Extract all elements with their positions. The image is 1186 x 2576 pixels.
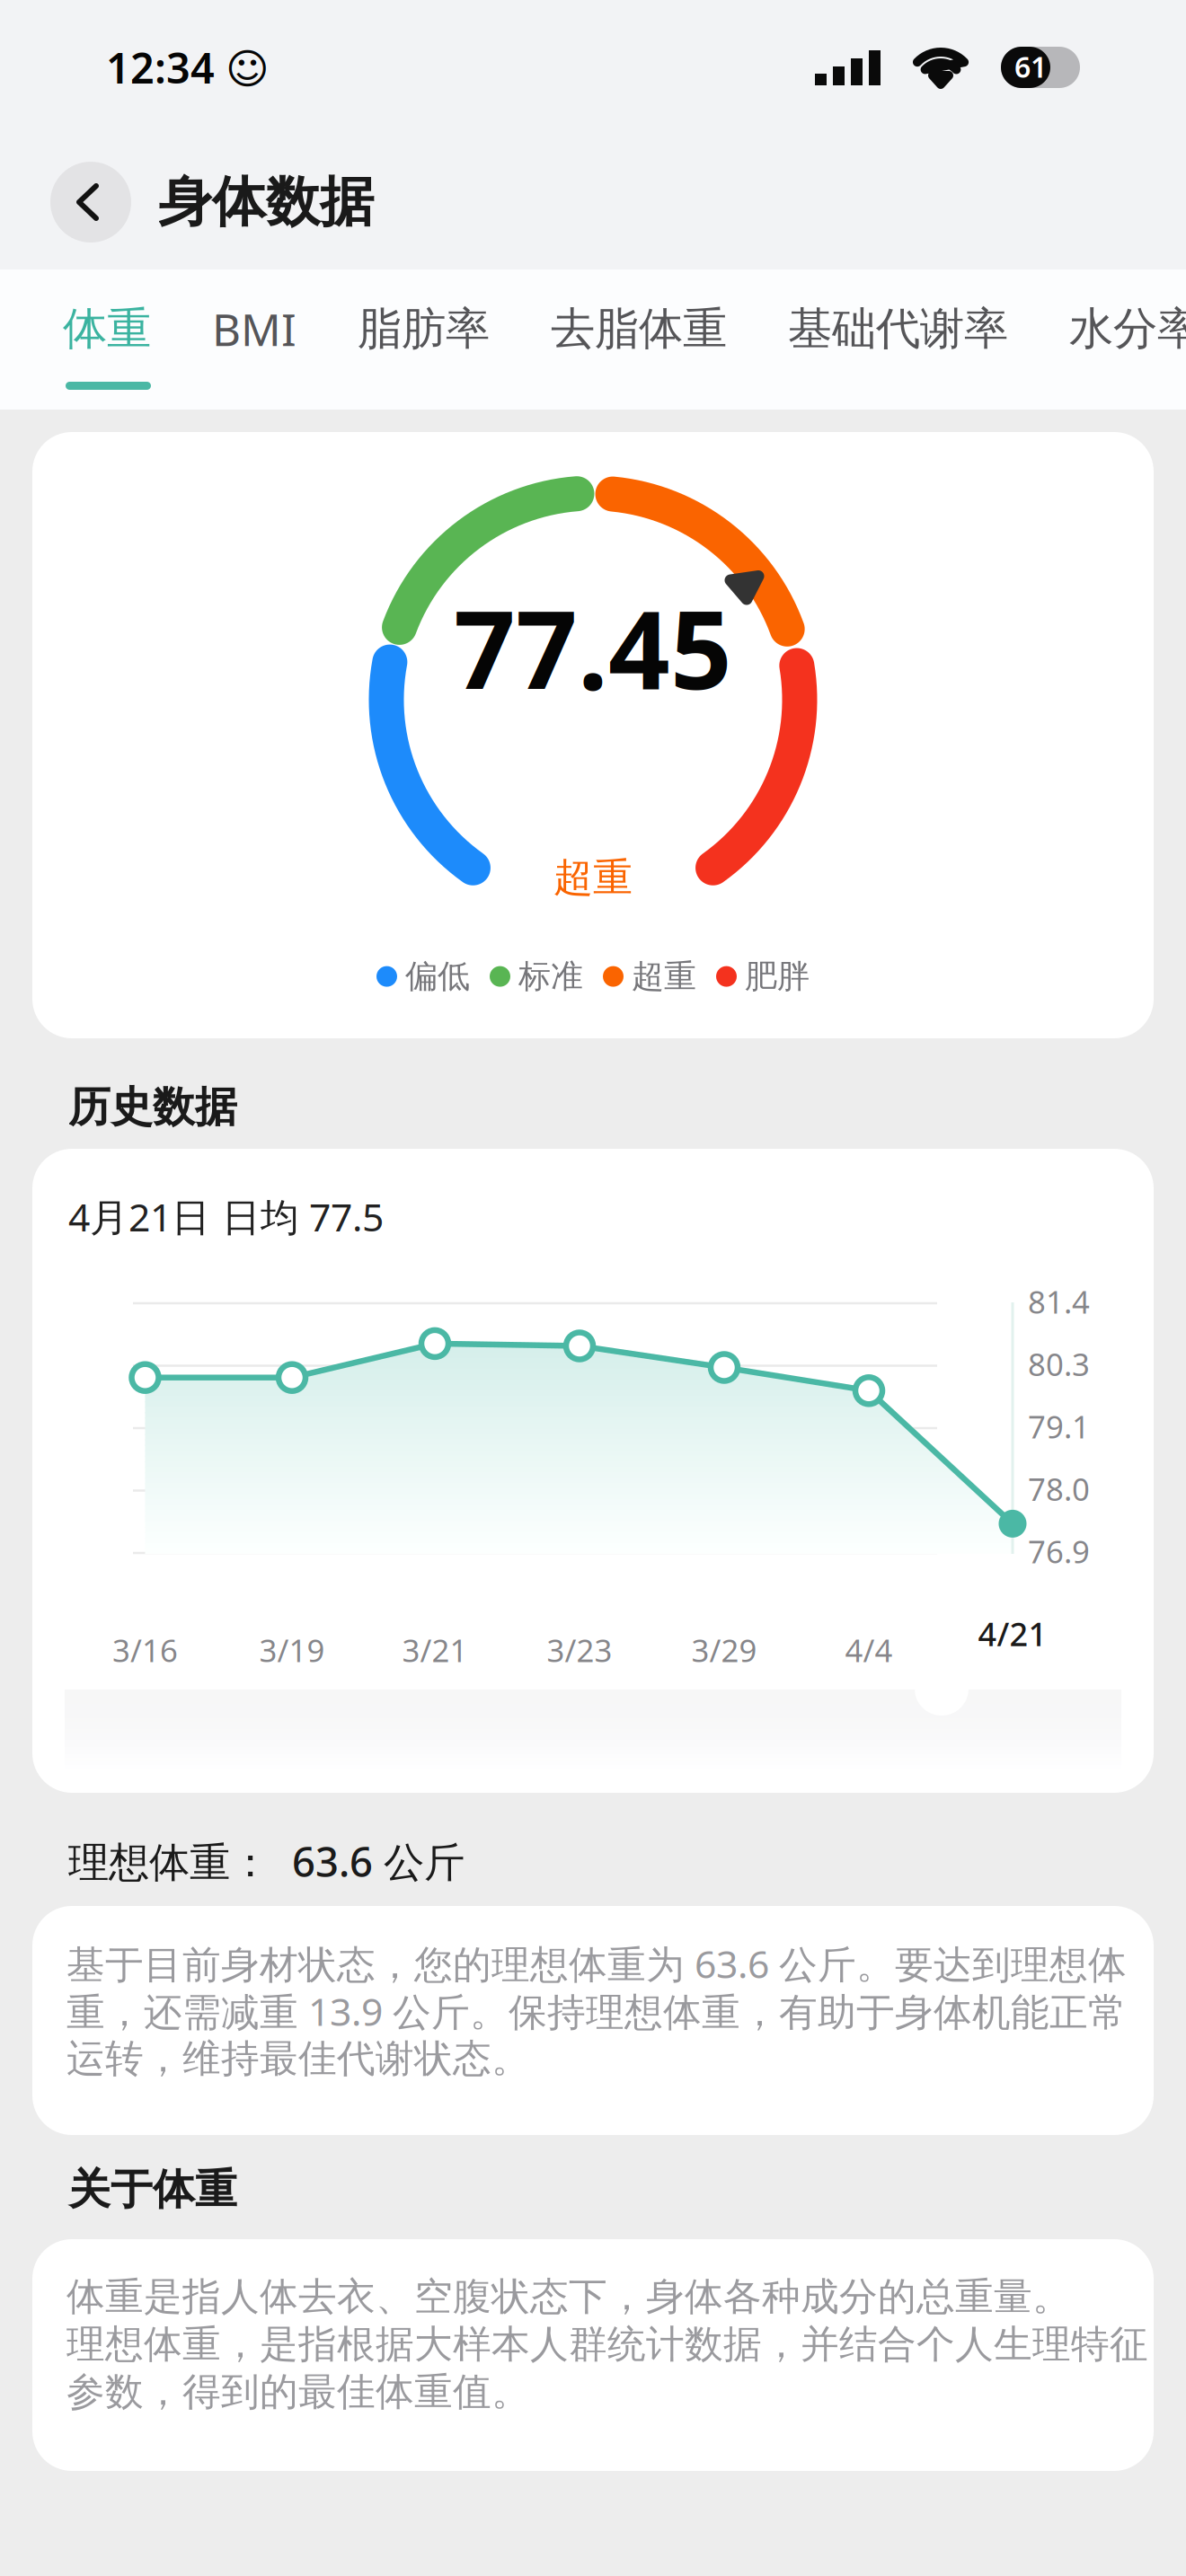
staticText: 超重 [632,957,696,996]
staticText: 79.1 [1028,1406,1090,1447]
staticText: 4/21 [978,1612,1047,1655]
staticText: 4月21日 日均 77.5 [68,1191,384,1242]
staticText: 3/19 [259,1629,325,1671]
staticText: 61 [1014,47,1047,86]
staticText: 脂肪率 [358,302,490,356]
button[interactable]: 体重 [32,284,181,374]
staticText: 80.3 [1028,1343,1090,1385]
staticText: 运转，维持最佳代谢状态。 [66,2035,530,2082]
staticText: 历史数据 [68,1081,237,1133]
staticText: 81.4 [1028,1281,1090,1322]
button[interactable]: BMI [181,284,327,374]
staticText: 基于目前身材状态，您的理想体重为 63.6 公斤。要达到理想体 [66,1938,1127,1989]
staticText: 3/21 [402,1629,468,1671]
staticText: 基础代谢率 [788,302,1008,356]
staticText: 76.9 [1028,1531,1090,1572]
staticText: 肥胖 [745,957,810,996]
staticText: 3/16 [112,1629,178,1671]
staticText: 12:34 ☺ [106,40,270,95]
staticText: 身体数据 [158,169,374,235]
button[interactable]: 水分率 [1039,284,1186,374]
staticText: 3/23 [547,1629,612,1671]
staticText: 体重是指人体去衣、空腹状态下，身体各种成分的总重量。 [66,2273,1071,2320]
staticText: BMI [212,299,296,358]
staticText: 水分率 [1069,302,1186,356]
staticText: 参数，得到的最佳体重值。 [66,2368,530,2415]
staticText: 77.45 [454,576,732,719]
staticText: 重，还需减重 13.9 公斤。保持理想体重，有助于身体机能正常 [66,1986,1127,2037]
staticText: 去脂体重 [551,302,727,356]
button[interactable]: 脂肪率 [327,284,520,374]
staticText: 4/4 [845,1629,893,1671]
staticText: 理想体重，是指根据大样本人群统计数据，并结合个人生理特征 [66,2321,1148,2368]
staticText: 体重 [63,302,151,356]
staticText: 3/29 [691,1629,757,1671]
staticText: 理想体重： 63.6 公斤 [68,1834,465,1888]
staticText: 偏低 [405,957,470,996]
button[interactable]: 基础代谢率 [757,284,1039,374]
staticText: 超重 [553,853,633,902]
button[interactable]: 返回 [50,162,131,243]
staticText: 78.0 [1028,1468,1090,1509]
staticText: 关于体重 [68,2164,237,2215]
staticText: 标准 [518,957,583,996]
button[interactable]: 去脂体重 [520,284,757,374]
